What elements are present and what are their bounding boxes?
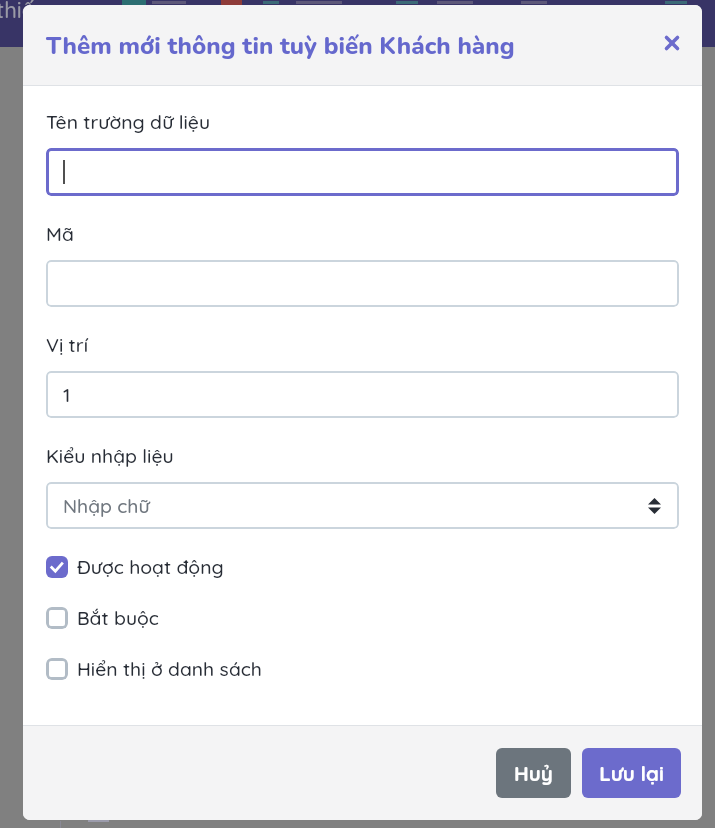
staticText: Tên trường dữ liệu (46, 110, 211, 134)
staticText: Được hoạt động (77, 555, 224, 579)
staticText: 1 (63, 383, 71, 407)
button[interactable]: Lưu lại (582, 748, 681, 798)
button[interactable]: Close dialog (657, 28, 687, 58)
button[interactable]: Hiển thị ở danh sách (46, 643, 679, 694)
button[interactable]: Được hoạt động (46, 541, 679, 592)
button[interactable]: Huỷ (496, 748, 571, 798)
button[interactable]: 1 (46, 371, 679, 418)
staticText: Kiểu nhập liệu (46, 444, 174, 468)
staticText: Thêm mới thông tin tuỳ biến Khách hàng (46, 30, 515, 63)
staticText: Lưu lại (599, 760, 664, 786)
staticText: Hiển thị ở danh sách (77, 657, 262, 681)
staticText: thiế (0, 0, 35, 24)
staticText: Nhập chữ (63, 494, 150, 518)
button[interactable] (46, 260, 679, 307)
staticText: Huỷ (514, 760, 553, 786)
button[interactable] (46, 148, 679, 196)
staticText: Bắt buộc (77, 606, 159, 630)
button[interactable]: Bắt buộc (46, 592, 679, 643)
staticText: Mã (46, 222, 74, 246)
staticText: Vị trí (46, 333, 88, 357)
button[interactable]: Nhập chữ (46, 482, 679, 529)
